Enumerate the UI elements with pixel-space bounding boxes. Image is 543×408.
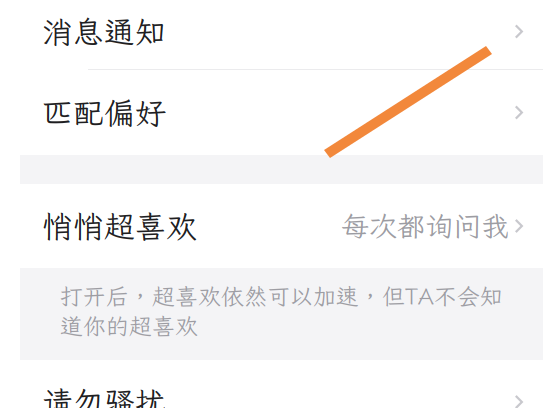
staticText: 悄悄超喜欢 bbox=[42, 206, 197, 246]
staticText: 每次都询问我 bbox=[341, 208, 509, 244]
button[interactable]: 请勿骚扰 bbox=[20, 360, 543, 408]
staticText: 打开后，超喜欢依然可以加速，但TA不会知道你的超喜欢 bbox=[60, 281, 503, 341]
staticText: 消息通知 bbox=[42, 11, 166, 52]
button[interactable]: 匹配偏好 bbox=[20, 70, 543, 155]
button[interactable]: 悄悄超喜欢 bbox=[20, 184, 543, 268]
staticText: 请勿骚扰 bbox=[42, 382, 166, 408]
staticText: 匹配偏好 bbox=[42, 92, 166, 133]
button[interactable]: 消息通知 bbox=[20, 0, 543, 69]
